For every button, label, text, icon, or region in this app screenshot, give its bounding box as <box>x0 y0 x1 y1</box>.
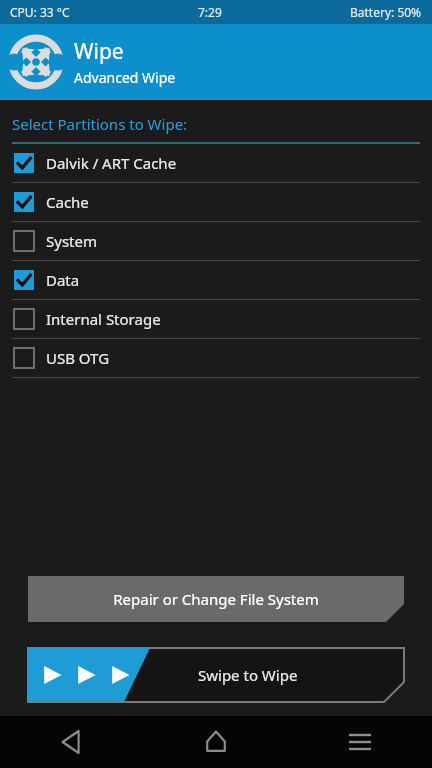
staticText: Dalvik / ART Cache <box>46 153 177 173</box>
button[interactable]: Cache <box>0 183 432 222</box>
staticText: Swipe to Wipe <box>198 665 298 685</box>
staticText: Advanced Wipe <box>74 68 176 87</box>
button[interactable]: System <box>0 222 432 261</box>
staticText: Wipe <box>74 37 124 66</box>
staticText: Repair or Change File System <box>113 589 319 609</box>
staticText: 7:29 <box>198 4 222 20</box>
button[interactable]: Back <box>0 716 144 768</box>
button[interactable]: Home <box>144 716 288 768</box>
button[interactable]: Data <box>0 261 432 300</box>
staticText: USB OTG <box>46 348 110 368</box>
staticText: Internal Storage <box>46 309 161 329</box>
staticText: Cache <box>46 192 89 212</box>
button[interactable]: USB OTG <box>0 339 432 378</box>
staticText: Data <box>46 270 80 290</box>
staticText: System <box>46 231 97 251</box>
staticText: Battery: 50% <box>350 4 422 20</box>
button[interactable]: Menu <box>288 716 432 768</box>
staticText: Select Partitions to Wipe: <box>12 114 188 134</box>
button[interactable]: Repair or Change File System <box>28 576 404 622</box>
button[interactable]: Dalvik / ART Cache <box>0 144 432 183</box>
button[interactable]: Internal Storage <box>0 300 432 339</box>
button[interactable]: TWRP logo <box>0 24 432 100</box>
other: TWRP logo <box>10 36 62 88</box>
button[interactable]: Swipe to Wipe <box>28 648 404 702</box>
staticText: CPU: 33 °C <box>10 4 70 20</box>
